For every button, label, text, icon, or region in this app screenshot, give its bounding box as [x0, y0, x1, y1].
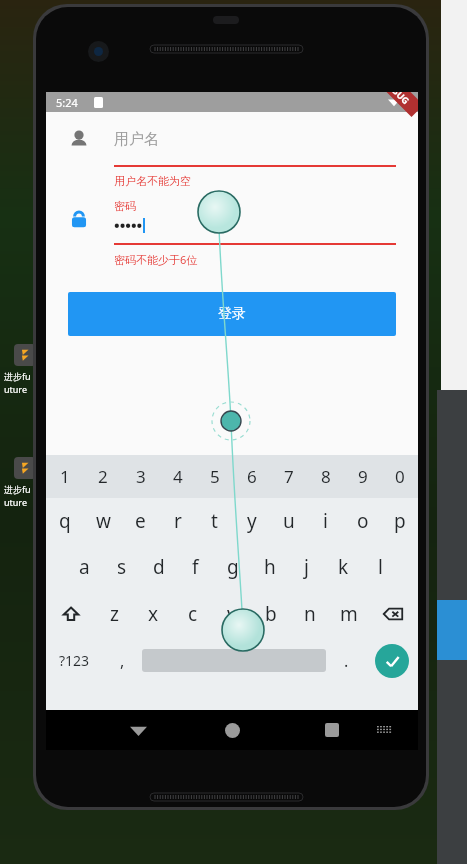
- button[interactable]: Space: [142, 649, 326, 672]
- other: Lock: [68, 208, 90, 230]
- staticText: c: [188, 601, 198, 627]
- button[interactable]: d: [140, 543, 177, 590]
- staticText: 5: [210, 465, 220, 488]
- button[interactable]: p: [381, 498, 418, 543]
- button[interactable]: a: [66, 543, 103, 590]
- staticText: b: [265, 601, 277, 627]
- button[interactable]: Enter: [366, 637, 418, 684]
- button[interactable]: 4: [159, 455, 196, 498]
- button[interactable]: Keyboard: [366, 710, 402, 750]
- button[interactable]: i: [307, 498, 344, 543]
- staticText: 3: [136, 465, 146, 488]
- button[interactable]: c: [173, 590, 212, 637]
- button[interactable]: l: [362, 543, 399, 590]
- button[interactable]: ,: [102, 637, 142, 684]
- button[interactable]: h: [251, 543, 288, 590]
- staticText: 密码不能少于6位: [114, 252, 198, 267]
- button[interactable]: r: [159, 498, 196, 543]
- button[interactable]: k: [325, 543, 362, 590]
- button[interactable]: w: [84, 498, 122, 543]
- button[interactable]: 1: [46, 455, 84, 498]
- button[interactable]: Home: [212, 710, 252, 750]
- other: Person: [68, 128, 90, 150]
- button[interactable]: b: [251, 590, 290, 637]
- staticText: 进步fu uture: [4, 370, 31, 395]
- button[interactable]: Back: [118, 710, 158, 750]
- staticText: x: [148, 601, 159, 627]
- button[interactable]: 登录: [68, 292, 396, 336]
- staticText: r: [174, 508, 182, 534]
- button[interactable]: g: [214, 543, 251, 590]
- staticText: 用户名不能为空: [114, 174, 191, 188]
- staticText: k: [338, 554, 349, 580]
- button[interactable]: Shift: [46, 590, 95, 637]
- button[interactable]: o: [344, 498, 381, 543]
- staticText: a: [79, 554, 90, 580]
- staticText: d: [153, 554, 165, 580]
- button[interactable]: s: [103, 543, 140, 590]
- staticText: 密码: [114, 199, 136, 213]
- staticText: q: [59, 508, 71, 534]
- staticText: f: [192, 554, 199, 580]
- staticText: h: [264, 554, 276, 580]
- staticText: 2: [98, 465, 108, 488]
- staticText: l: [378, 554, 383, 580]
- staticText: 1: [60, 465, 70, 488]
- button[interactable]: Lock: [68, 199, 396, 239]
- staticText: DEBUG: [382, 92, 412, 106]
- staticText: s: [117, 554, 127, 580]
- button[interactable]: 8: [307, 455, 344, 498]
- button[interactable]: 7: [270, 455, 307, 498]
- staticText: 登录: [218, 305, 246, 323]
- button[interactable]: 2: [84, 455, 122, 498]
- button[interactable]: 9: [344, 455, 381, 498]
- staticText: w: [96, 508, 111, 534]
- staticText: i: [323, 508, 328, 534]
- button[interactable]: y: [233, 498, 270, 543]
- staticText: 4: [173, 465, 183, 488]
- staticText: j: [304, 554, 309, 580]
- button[interactable]: u: [270, 498, 307, 543]
- button[interactable]: Backspace: [368, 590, 418, 637]
- button[interactable]: z: [95, 590, 134, 637]
- button[interactable]: 0: [381, 455, 418, 498]
- staticText: 进步fu uture: [4, 483, 31, 508]
- staticText: m: [340, 601, 358, 627]
- staticText: •••••: [114, 215, 143, 235]
- staticText: v: [227, 601, 237, 627]
- button[interactable]: j: [288, 543, 325, 590]
- button[interactable]: 6: [233, 455, 270, 498]
- staticText: y: [247, 508, 257, 534]
- staticText: n: [304, 601, 316, 627]
- staticText: 6: [247, 465, 257, 488]
- button[interactable]: 3: [122, 455, 159, 498]
- staticText: 7: [284, 465, 294, 488]
- button[interactable]: Person: [68, 121, 396, 157]
- button[interactable]: t: [196, 498, 233, 543]
- staticText: u: [283, 508, 295, 534]
- staticText: 用户名: [114, 130, 159, 149]
- button[interactable]: e: [122, 498, 159, 543]
- staticText: p: [394, 508, 406, 534]
- button[interactable]: q: [46, 498, 84, 543]
- button[interactable]: n: [290, 590, 329, 637]
- button[interactable]: v: [212, 590, 251, 637]
- staticText: 8: [321, 465, 331, 488]
- button[interactable]: ?123: [46, 637, 102, 684]
- staticText: z: [110, 601, 119, 627]
- button[interactable]: Recents: [312, 710, 352, 750]
- button[interactable]: f: [177, 543, 214, 590]
- staticText: .: [344, 650, 349, 672]
- button[interactable]: 5: [196, 455, 233, 498]
- staticText: ,: [120, 650, 125, 672]
- staticText: o: [357, 508, 369, 534]
- button[interactable]: m: [329, 590, 368, 637]
- staticText: 9: [358, 465, 368, 488]
- staticText: ?123: [59, 651, 90, 670]
- staticText: e: [135, 508, 146, 534]
- button[interactable]: x: [134, 590, 173, 637]
- button[interactable]: .: [326, 637, 366, 684]
- staticText: 5:24: [56, 95, 78, 110]
- staticText: g: [227, 554, 239, 580]
- staticText: t: [211, 508, 218, 534]
